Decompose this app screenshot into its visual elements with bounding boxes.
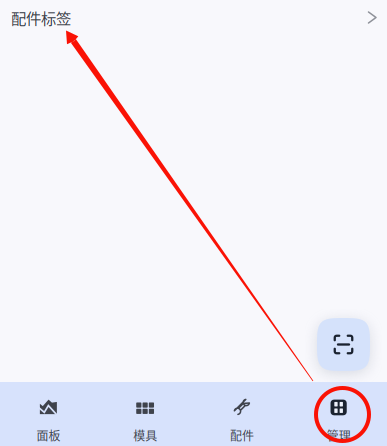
staticText: 模具 (133, 426, 157, 444)
button[interactable]: 配件标签 (0, 0, 387, 35)
staticText: 配件标签 (11, 6, 71, 29)
staticText: 管理 (327, 426, 351, 444)
staticText: 配件 (230, 426, 254, 444)
button[interactable]: 配件 (193, 382, 290, 446)
staticText: 面板 (36, 426, 60, 444)
button[interactable]: 模具 (97, 382, 194, 446)
button[interactable]: 面板 (0, 382, 97, 446)
button[interactable]: 管理 (290, 382, 387, 446)
button[interactable]: Scan (317, 318, 370, 371)
